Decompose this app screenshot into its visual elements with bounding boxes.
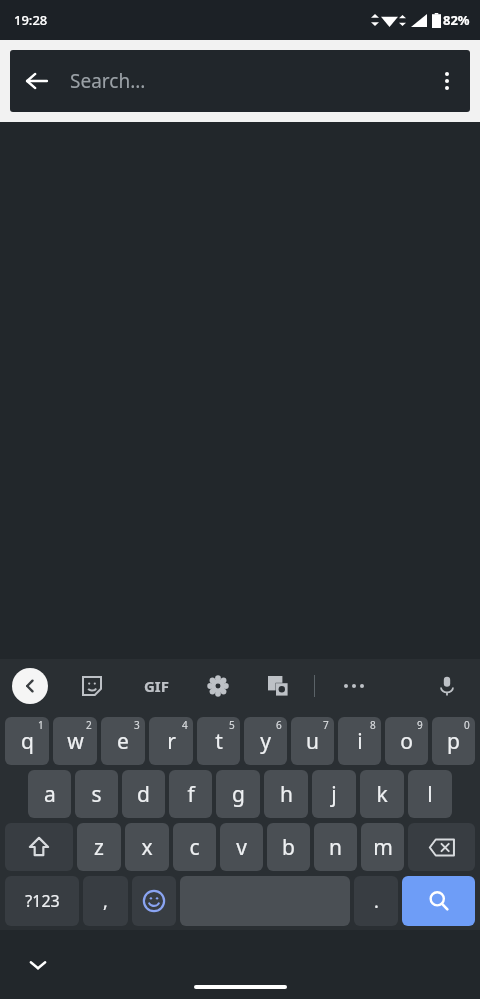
button[interactable]: More: [335, 667, 373, 705]
button[interactable]: Translate: [260, 668, 296, 704]
staticText: q: [21, 727, 34, 756]
button[interactable]: h: [264, 770, 308, 818]
staticText: m: [373, 833, 393, 862]
button[interactable]: b: [267, 823, 310, 871]
staticText: GIF: [144, 676, 169, 696]
button[interactable]: j: [312, 770, 356, 818]
button[interactable]: More options: [424, 58, 470, 104]
staticText: z: [94, 833, 104, 862]
staticText: c: [189, 833, 200, 862]
button[interactable]: m: [361, 823, 404, 871]
staticText: a: [44, 780, 56, 809]
button[interactable]: Back: [10, 50, 470, 112]
button[interactable]: Hide keyboard: [18, 945, 58, 985]
button[interactable]: f: [169, 770, 212, 818]
staticText: t: [215, 727, 223, 756]
staticText: u: [306, 727, 319, 756]
staticText: 7: [323, 718, 329, 732]
staticText: b: [282, 833, 295, 862]
staticText: k: [376, 780, 388, 809]
staticText: 3: [134, 718, 140, 732]
button[interactable]: w: [53, 717, 97, 765]
staticText: j: [331, 780, 337, 809]
staticText: ,: [103, 889, 108, 914]
staticText: w: [67, 727, 84, 756]
button[interactable]: p: [432, 717, 475, 765]
button[interactable]: d: [122, 770, 165, 818]
staticText: e: [117, 727, 129, 756]
button[interactable]: Expand toolbar: [12, 668, 48, 704]
staticText: d: [137, 780, 150, 809]
staticText: x: [141, 833, 153, 862]
staticText: 5: [229, 718, 235, 732]
button[interactable]: x: [125, 823, 169, 871]
staticText: 4: [182, 718, 188, 732]
staticText: Search...: [70, 68, 424, 94]
button[interactable]: y: [244, 717, 287, 765]
staticText: .: [374, 889, 379, 914]
button[interactable]: q: [5, 717, 49, 765]
button[interactable]: l: [408, 770, 452, 818]
staticText: 0: [464, 718, 470, 732]
staticText: s: [91, 780, 102, 809]
button[interactable]: s: [75, 770, 118, 818]
button[interactable]: n: [314, 823, 357, 871]
button[interactable]: GIF: [136, 668, 176, 704]
staticText: l: [427, 780, 433, 809]
button[interactable]: v: [220, 823, 263, 871]
button[interactable]: u: [291, 717, 334, 765]
button[interactable]: o: [385, 717, 428, 765]
button[interactable]: Settings: [200, 668, 236, 704]
button[interactable]: ,: [83, 876, 128, 926]
button[interactable]: t: [197, 717, 240, 765]
button[interactable]: Backspace: [408, 823, 475, 871]
button[interactable]: k: [360, 770, 404, 818]
staticText: 19:28: [14, 11, 48, 29]
button[interactable]: g: [216, 770, 260, 818]
button[interactable]: ?123: [5, 876, 79, 926]
staticText: r: [167, 727, 176, 756]
staticText: g: [232, 780, 245, 809]
button[interactable]: Emoji: [132, 876, 176, 926]
staticText: n: [329, 833, 342, 862]
button[interactable]: c: [173, 823, 216, 871]
button[interactable]: Voice input: [428, 667, 466, 705]
staticText: 8: [370, 718, 376, 732]
button[interactable]: i: [338, 717, 381, 765]
staticText: 9: [417, 718, 423, 732]
staticText: p: [447, 727, 460, 756]
staticText: v: [236, 833, 247, 862]
button[interactable]: Shift: [5, 823, 73, 871]
staticText: 1: [38, 718, 44, 732]
button[interactable]: r: [149, 717, 193, 765]
staticText: i: [357, 727, 363, 756]
staticText: y: [260, 727, 271, 756]
button[interactable]: a: [28, 770, 71, 818]
button[interactable]: Search: [402, 876, 475, 926]
staticText: o: [400, 727, 413, 756]
staticText: h: [280, 780, 293, 809]
staticText: 6: [276, 718, 282, 732]
staticText: 2: [86, 718, 92, 732]
staticText: 82%: [443, 11, 470, 29]
button[interactable]: Back: [10, 54, 64, 108]
button[interactable]: .: [354, 876, 398, 926]
button[interactable]: e: [101, 717, 145, 765]
button[interactable]: Stickers: [74, 668, 110, 704]
staticText: ?123: [25, 890, 60, 912]
staticText: f: [187, 780, 195, 809]
button[interactable]: z: [77, 823, 121, 871]
